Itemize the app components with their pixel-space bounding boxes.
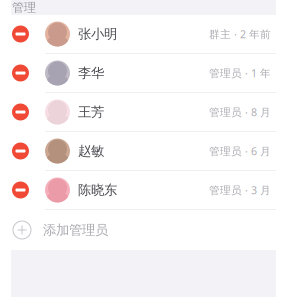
staticText: 赵敏 bbox=[78, 143, 104, 159]
staticText: 李华 bbox=[78, 65, 104, 81]
button[interactable]: 张小明 bbox=[11, 15, 276, 54]
staticText: 管理 bbox=[12, 0, 36, 15]
staticText: 陈晓东 bbox=[78, 182, 117, 198]
button[interactable]: 添加管理员 bbox=[11, 210, 276, 250]
button[interactable]: 陈晓东 bbox=[11, 171, 276, 210]
staticText: 添加管理员 bbox=[43, 222, 108, 238]
button[interactable]: 王芳 bbox=[11, 93, 276, 132]
staticText: 管理员 · 6 月 bbox=[209, 144, 271, 158]
staticText: 管理员 · 1 年 bbox=[209, 66, 271, 80]
staticText: 群主 · 2 年前 bbox=[209, 27, 271, 41]
button[interactable]: 赵敏 bbox=[11, 132, 276, 171]
staticText: 管理员 · 3 月 bbox=[209, 183, 271, 197]
staticText: 王芳 bbox=[78, 104, 104, 120]
button[interactable]: 李华 bbox=[11, 54, 276, 93]
staticText: 张小明 bbox=[78, 26, 117, 42]
staticText: 管理员 · 8 月 bbox=[209, 105, 271, 119]
